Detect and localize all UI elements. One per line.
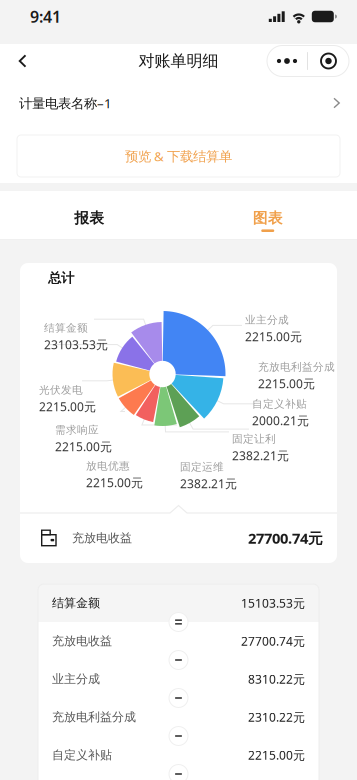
staticText: 结算金额	[52, 596, 100, 610]
staticText: 固定运维	[180, 460, 224, 474]
staticText: 27700.74元	[248, 528, 323, 548]
staticText: 业主分成	[52, 672, 100, 686]
staticText: 充放电收益	[72, 531, 132, 545]
staticText: 总计	[48, 270, 74, 286]
staticText: 业主分成	[245, 313, 289, 327]
staticText: 自定义补贴	[52, 748, 112, 762]
staticText: 23103.53元	[44, 337, 108, 352]
staticText: 2382.21元	[180, 476, 237, 491]
staticText: 27700.74元	[241, 633, 305, 649]
button[interactable]: 计量电表名称–1	[0, 82, 357, 124]
staticText: 2215.00元	[245, 329, 302, 344]
staticText: 计量电表名称–1	[19, 94, 112, 112]
staticText: 2310.22元	[248, 709, 305, 725]
staticText: 15103.53元	[241, 595, 305, 611]
button[interactable]: 报表	[0, 191, 178, 240]
button[interactable]: 图表	[178, 191, 357, 240]
staticText: 2215.00元	[248, 747, 305, 763]
staticText: 自定义补贴	[252, 397, 307, 411]
staticText: 固定让利	[232, 432, 276, 446]
staticText: 8310.22元	[248, 671, 305, 687]
staticText: 充放电收益	[52, 634, 112, 648]
staticText: 2382.21元	[232, 448, 289, 463]
staticText: 图表	[253, 209, 283, 227]
staticText: 2215.00元	[39, 399, 96, 414]
staticText: 2000.21元	[252, 413, 309, 428]
staticText: 需求响应	[55, 423, 99, 437]
staticText: 2215.00元	[86, 475, 143, 490]
staticText: 充放电利益分成	[258, 360, 335, 374]
staticText: 预览 & 下载结算单	[125, 147, 232, 165]
staticText: 放电优惠	[86, 459, 130, 473]
staticText: 对账单明细	[138, 51, 218, 71]
staticText: 2215.00元	[55, 439, 112, 454]
button[interactable]: Back	[0, 43, 46, 79]
staticText: 光伏发电	[39, 383, 83, 397]
staticText: 报表	[74, 209, 104, 227]
staticText: 9:41	[30, 6, 61, 27]
staticText: 结算金额	[44, 321, 88, 335]
staticText: 2215.00元	[258, 376, 315, 391]
staticText: 充放电利益分成	[52, 710, 136, 724]
button[interactable]: Menu	[267, 45, 357, 76]
button[interactable]: 预览 & 下载结算单	[0, 124, 357, 183]
